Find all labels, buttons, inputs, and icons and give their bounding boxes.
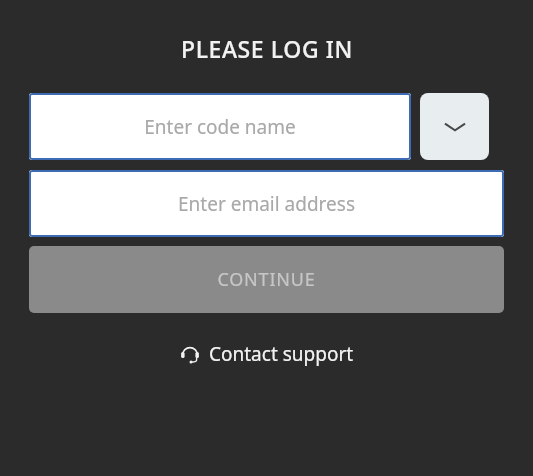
staticText: Enter code name [144,114,296,140]
button[interactable]: Contact support [174,337,360,371]
staticText: PLEASE LOG IN [181,33,353,64]
staticText: CONTINUE [217,267,316,292]
staticText: Enter email address [178,191,355,217]
button[interactable]: Show code name options [420,93,489,160]
button[interactable]: Enter email address [29,170,504,237]
button[interactable]: Enter code name [29,93,411,160]
staticText: Contact support [209,341,354,367]
button[interactable]: CONTINUE [29,246,504,313]
